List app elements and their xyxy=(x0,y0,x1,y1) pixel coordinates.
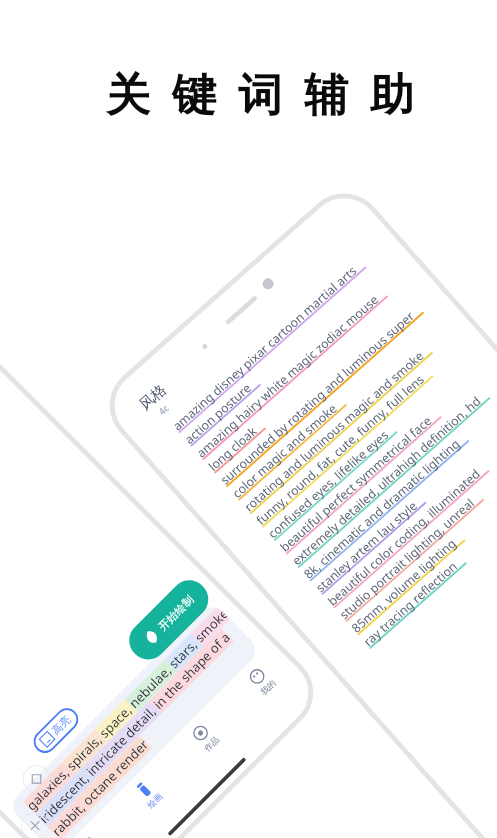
staticText: studio portrait lighting, unreal xyxy=(336,494,479,624)
button[interactable]: 高亮 xyxy=(29,703,83,758)
staticText: 4c xyxy=(156,401,171,417)
staticText: surrounded by rotating and luminous supe… xyxy=(217,307,419,489)
staticText: 绘画 xyxy=(145,791,165,811)
staticText: long cloak xyxy=(205,423,261,475)
staticText: 高亮 xyxy=(49,713,73,737)
staticText: extremely detailed, ultrahigh definition… xyxy=(288,393,485,570)
staticText: ray tracing reflection xyxy=(360,558,462,651)
staticText: 我的 xyxy=(258,678,278,698)
button[interactable]: 绘画 xyxy=(107,753,190,836)
button[interactable]: 我的 xyxy=(220,640,303,723)
staticText: stanley artem lau style xyxy=(312,497,421,597)
staticText: 85mm, volume lighting xyxy=(348,535,460,637)
staticText: 作品 xyxy=(202,734,222,754)
staticText: 风格 xyxy=(136,380,171,415)
button[interactable]: Add xyxy=(15,806,55,838)
button[interactable]: Layers xyxy=(17,759,56,799)
staticText: amazing disney pixar cartoon martial art… xyxy=(169,262,361,435)
staticText: beautiful color coding, illuminated xyxy=(324,466,484,610)
staticText: 开始绘制 xyxy=(155,592,196,633)
staticText: rabbit, octane render xyxy=(48,735,152,838)
staticText: galaxies, spirals, space, nebulae, stars… xyxy=(22,606,230,814)
staticText: 8k, cinematic and dramatic lighting xyxy=(300,435,464,583)
staticText: action posture xyxy=(181,379,256,448)
staticText: rotating and luminous magic and smoke xyxy=(241,347,428,516)
button[interactable]: 开始绘制 xyxy=(121,572,216,667)
staticText: amazing hairy white magic zodiac mouse xyxy=(193,291,383,462)
staticText: confused eyes, lifelike eyes xyxy=(264,427,392,543)
staticText: beautiful perfect symmetrical face xyxy=(276,412,437,556)
staticText: 关键词辅助 xyxy=(95,68,425,123)
button[interactable]: 作品 xyxy=(164,697,246,780)
staticText: iridescent, intricate detail, in the sha… xyxy=(35,628,234,827)
button[interactable]: galaxies, spirals, space, nebulae, stars… xyxy=(7,601,261,838)
staticText: color magic and smoke xyxy=(229,399,342,502)
button[interactable]: 作画 xyxy=(51,810,133,838)
staticText: funny, round, fat, cute, funny, full len… xyxy=(252,371,428,529)
